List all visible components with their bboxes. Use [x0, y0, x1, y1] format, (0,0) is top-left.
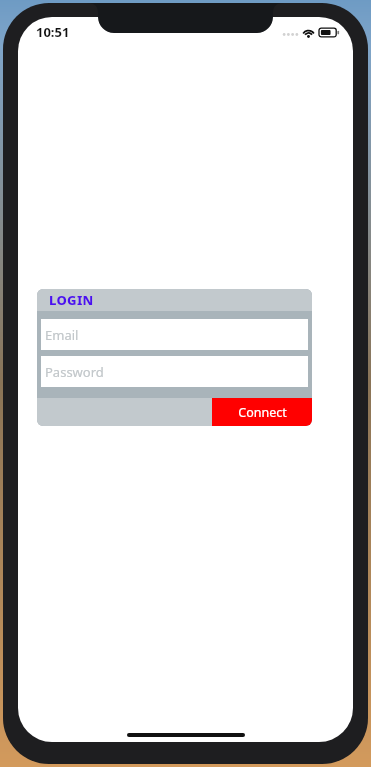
button[interactable]: Password [41, 356, 308, 387]
staticText: LOGIN [49, 291, 94, 309]
staticText: Connect [238, 404, 287, 421]
staticText: Email [45, 326, 79, 344]
button[interactable]: Email [41, 319, 308, 350]
button[interactable]: Connect [212, 398, 312, 426]
staticText: 10:51 [36, 23, 70, 41]
staticText: Password [45, 363, 104, 381]
